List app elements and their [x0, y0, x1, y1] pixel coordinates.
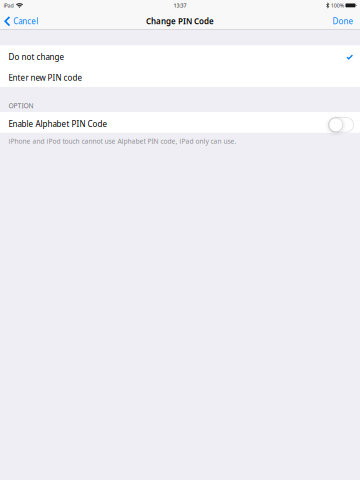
button[interactable]: Do not change — [0, 45, 360, 66]
staticText: Cancel — [13, 16, 38, 26]
button[interactable]: Enable Alphabet PIN Code — [0, 112, 360, 133]
staticText: 100% — [331, 2, 344, 9]
staticText: iPhone and iPod touch cannot use Alphabe… — [8, 137, 236, 146]
button[interactable]: Done — [325, 13, 360, 29]
button[interactable]: Cancel — [0, 13, 44, 30]
staticText: iPad — [3, 2, 13, 9]
button[interactable]: Enter new PIN code — [0, 66, 360, 87]
staticText: Do not change — [8, 52, 64, 62]
staticText: 13:37 — [173, 2, 186, 9]
staticText: Change PIN Code — [146, 16, 214, 26]
staticText: Enter new PIN code — [8, 72, 82, 83]
staticText: Done — [332, 16, 353, 26]
staticText: Enable Alphabet PIN Code — [8, 119, 107, 129]
staticText: OPTION — [8, 101, 33, 110]
